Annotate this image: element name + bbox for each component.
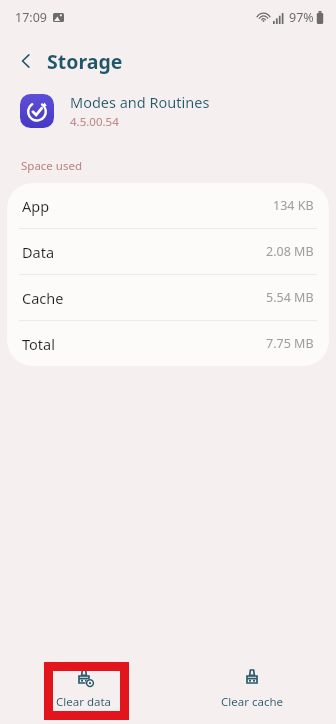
staticText: 7.75 MB <box>266 335 314 352</box>
button[interactable]: Data <box>7 229 329 275</box>
staticText: Modes and Routines <box>70 92 210 112</box>
staticText: Cache <box>22 288 64 308</box>
button[interactable]: Modes and Routines <box>0 88 336 134</box>
staticText: Storage <box>47 48 123 75</box>
button[interactable]: Cache <box>7 275 329 321</box>
staticText: 4.5.00.54 <box>70 114 119 130</box>
staticText: 97% <box>289 9 314 26</box>
button[interactable]: Total <box>7 321 329 366</box>
staticText: Space used <box>21 158 83 174</box>
staticText: 17:09 <box>15 9 47 26</box>
button[interactable]: Clear data <box>40 662 128 716</box>
button[interactable]: Back <box>8 43 44 79</box>
button[interactable]: Clear cache <box>205 662 299 716</box>
staticText: App <box>22 196 50 216</box>
staticText: Data <box>22 242 55 262</box>
button[interactable]: App <box>7 183 329 229</box>
staticText: 134 KB <box>273 197 314 214</box>
staticText: Clear data <box>56 694 112 710</box>
staticText: 5.54 MB <box>266 289 314 306</box>
staticText: Total <box>22 334 55 354</box>
staticText: 2.08 MB <box>266 243 314 260</box>
staticText: Clear cache <box>221 694 283 710</box>
